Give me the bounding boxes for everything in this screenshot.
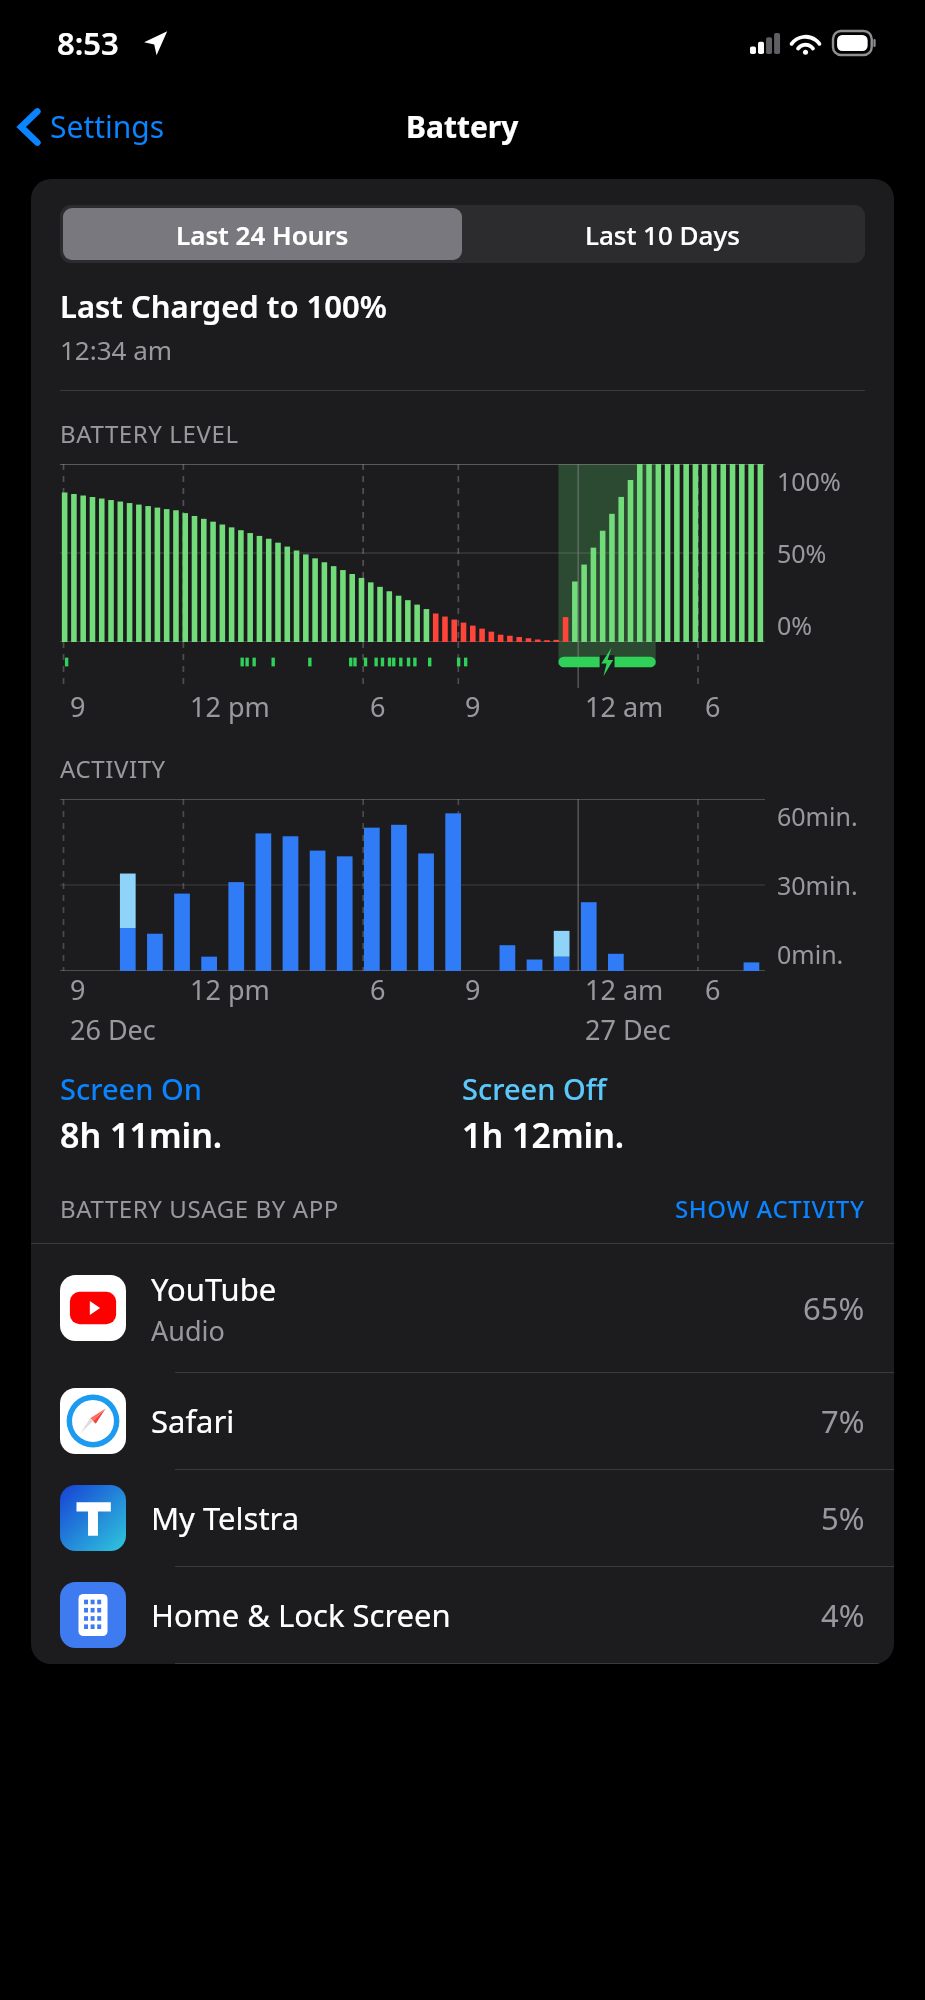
staticText: Last 10 Days — [585, 217, 740, 252]
staticText: 5% — [821, 1497, 865, 1539]
staticText: BATTERY USAGE BY APP — [60, 1192, 339, 1225]
staticText: 12 pm — [190, 688, 270, 725]
staticText: 65% — [803, 1287, 865, 1329]
staticText: 0min. — [777, 937, 844, 971]
staticText: 9 — [465, 971, 481, 1008]
staticText: Last 24 Hours — [176, 217, 349, 252]
staticText: Screen On — [60, 1069, 202, 1108]
button[interactable]: My Telstra — [31, 1470, 894, 1567]
button[interactable]: Last 24 Hours — [63, 208, 462, 260]
staticText: 27 Dec — [585, 1011, 671, 1048]
staticText: Settings — [50, 106, 165, 147]
staticText: Battery — [406, 106, 519, 147]
staticText: 6 — [370, 688, 386, 725]
staticText: 6 — [705, 971, 721, 1008]
staticText: 12 pm — [190, 971, 270, 1008]
button[interactable]: Safari — [31, 1373, 894, 1470]
staticText: YouTube — [151, 1268, 277, 1310]
button[interactable]: Screen Off — [462, 1069, 865, 1158]
staticText: Last Charged to 100% — [60, 285, 387, 327]
staticText: 26 Dec — [70, 1011, 156, 1048]
staticText: SHOW ACTIVITY — [675, 1192, 865, 1225]
staticText: 7% — [821, 1400, 865, 1442]
staticText: 6 — [705, 688, 721, 725]
staticText: 6 — [370, 971, 386, 1008]
staticText: 9 — [70, 971, 86, 1008]
staticText: Home & Lock Screen — [151, 1594, 451, 1636]
staticText: 12:34 am — [60, 332, 173, 367]
staticText: Screen Off — [462, 1069, 607, 1108]
staticText: 0% — [777, 608, 813, 642]
staticText: 50% — [777, 536, 827, 570]
other: Location — [142, 30, 168, 56]
staticText: 4% — [821, 1594, 865, 1636]
button[interactable]: YouTube — [31, 1244, 894, 1373]
staticText: 100% — [777, 464, 841, 498]
staticText: Audio — [151, 1312, 225, 1349]
staticText: ACTIVITY — [60, 752, 166, 785]
staticText: 12 am — [585, 688, 664, 725]
staticText: Safari — [151, 1400, 235, 1442]
staticText: 9 — [70, 688, 86, 725]
staticText: 8h 11min. — [60, 1112, 223, 1158]
staticText: 8:53 — [57, 22, 119, 64]
staticText: 12 am — [585, 971, 664, 1008]
staticText: 1h 12min. — [462, 1112, 625, 1158]
button[interactable]: Screen On — [60, 1069, 462, 1158]
staticText: BATTERY LEVEL — [60, 417, 239, 450]
button[interactable]: Settings — [0, 98, 181, 155]
button[interactable]: Home & Lock Screen — [31, 1567, 894, 1664]
button[interactable]: SHOW ACTIVITY — [675, 1192, 865, 1225]
staticText: 60min. — [777, 799, 858, 833]
staticText: 30min. — [777, 868, 858, 902]
staticText: 9 — [465, 688, 481, 725]
button[interactable]: Last 10 Days — [462, 208, 862, 260]
staticText: My Telstra — [151, 1497, 300, 1539]
